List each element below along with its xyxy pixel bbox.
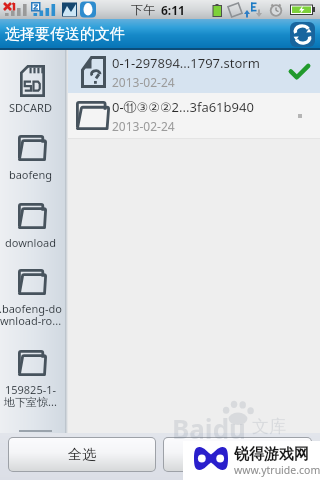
staticText: 锐得游戏网 bbox=[234, 445, 309, 464]
staticText: 0-1-297894...1797.storm bbox=[112, 54, 260, 72]
button[interactable]: SDCARD bbox=[0, 55, 65, 126]
staticText: SDCARD bbox=[0, 100, 63, 115]
staticText: baofeng bbox=[0, 167, 63, 182]
button[interactable]: 0-⑪③②②2...3fa61b940 bbox=[68, 93, 320, 138]
button[interactable]: .baofeng-do wnload-ro... bbox=[0, 259, 65, 327]
button[interactable]: 159825-1- 地下室惊... bbox=[0, 340, 65, 408]
staticText: 2013-02-24 bbox=[112, 118, 175, 134]
button[interactable]: download bbox=[0, 193, 65, 261]
staticText: 159825-1- 地下室惊... bbox=[0, 382, 63, 409]
staticText: www.ytruide.com bbox=[234, 463, 320, 477]
staticText: 2013-02-24 bbox=[112, 74, 175, 90]
staticText: 发送 bbox=[224, 446, 252, 464]
staticText: 0-⑪③②②2...3fa61b940 bbox=[112, 98, 254, 116]
staticText: 全选 bbox=[68, 446, 96, 464]
staticText: 6:11 bbox=[161, 2, 185, 18]
staticText: 选择要传送的文件 bbox=[5, 25, 125, 44]
button[interactable]: 发送 bbox=[164, 438, 311, 471]
staticText: download bbox=[0, 235, 63, 250]
button[interactable]: 0-1-297894...1797.storm bbox=[68, 50, 320, 93]
button[interactable]: 全选 bbox=[9, 438, 155, 471]
button[interactable]: Refresh bbox=[290, 22, 315, 47]
staticText: Baidu bbox=[172, 411, 246, 446]
staticText: .baofeng-do wnload-ro... bbox=[0, 301, 63, 328]
staticText: 文库 bbox=[252, 416, 286, 437]
staticText: 下午 bbox=[131, 2, 155, 17]
button[interactable]: baofeng bbox=[0, 125, 65, 193]
